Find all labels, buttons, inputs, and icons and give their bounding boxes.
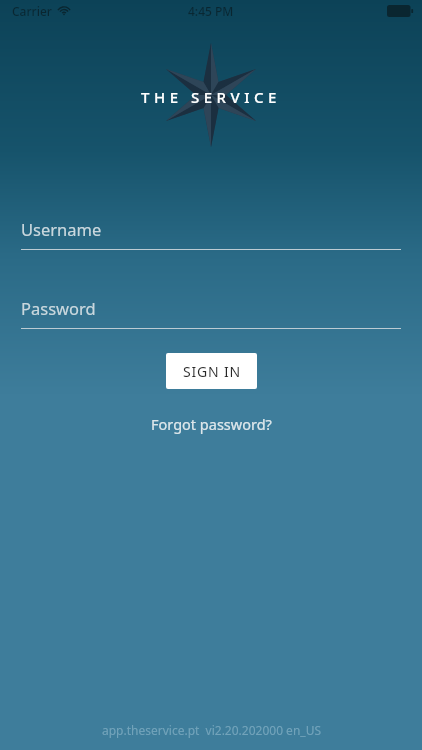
staticText: SIGN IN <box>183 362 241 381</box>
staticText: Password <box>21 297 96 319</box>
staticText: Username <box>21 218 102 240</box>
staticText: Carrier <box>12 3 52 19</box>
button[interactable]: Forgot password? <box>141 411 282 437</box>
button[interactable]: Password <box>21 297 401 329</box>
button[interactable]: SIGN IN <box>166 353 257 389</box>
button[interactable]: Username <box>21 218 401 250</box>
staticText: 4:45 PM <box>188 3 234 19</box>
staticText: Forgot password? <box>151 414 272 434</box>
staticText: app.theservice.pt vi2.20.202000 en_US <box>102 722 321 738</box>
staticText: THE SERVICE <box>141 87 281 107</box>
